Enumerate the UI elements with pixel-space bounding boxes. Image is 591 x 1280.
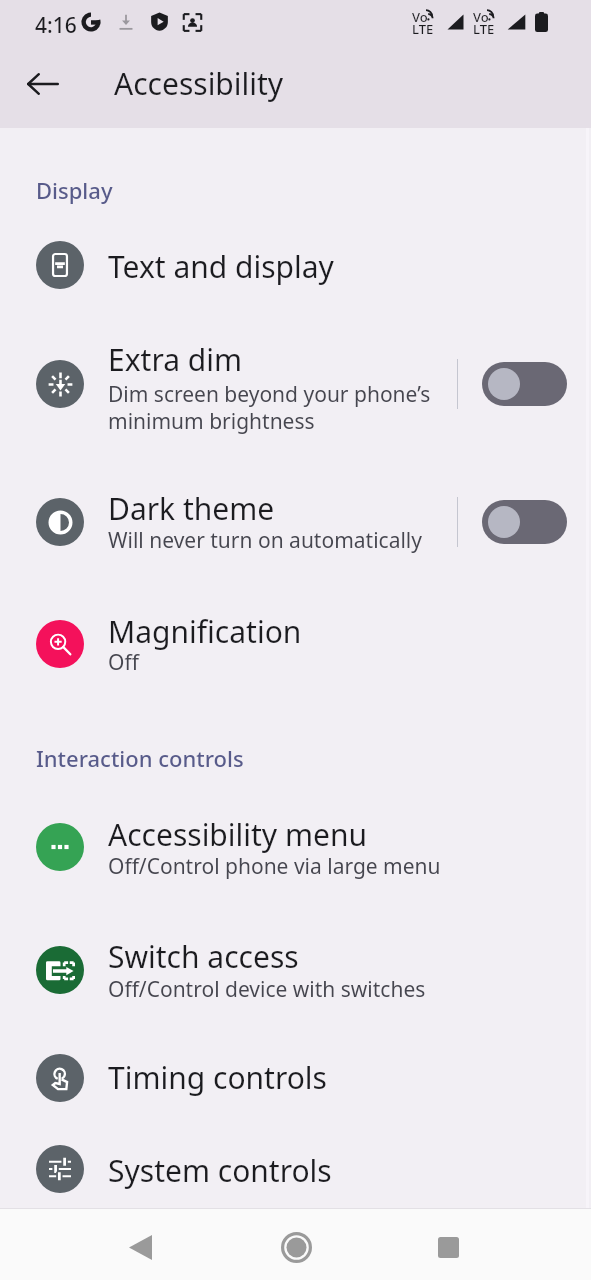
staticText: Text and display [108,246,334,287]
staticText: Vo [412,8,428,26]
staticText: Off [108,648,139,677]
staticText: Off/Control device with switches [108,975,426,1004]
button[interactable] [0,1133,591,1205]
button[interactable] [0,811,591,883]
staticText: LTE [412,20,434,38]
staticText: Interaction controls [36,743,244,773]
button[interactable] [0,348,591,420]
staticText: System controls [108,1150,332,1191]
staticText: Accessibility [114,63,284,104]
staticText: Vo [473,8,489,26]
button[interactable]: Home [264,1215,328,1279]
button[interactable] [0,229,591,301]
button[interactable] [0,608,591,680]
staticText: Timing controls [108,1057,327,1098]
staticText: Dim screen beyond your phone’s minimum b… [108,380,431,435]
button[interactable]: Toggle Dark theme [482,500,567,544]
button[interactable] [0,934,591,1006]
button[interactable]: Back [108,1215,172,1279]
button[interactable]: Recents [416,1215,480,1279]
staticText: Magnification [108,611,302,652]
staticText: Accessibility menu [108,814,368,855]
staticText: Display [36,175,113,205]
staticText: Switch access [108,936,299,977]
button[interactable]: Toggle Extra dim [482,362,567,406]
staticText: Extra dim [108,339,243,380]
button[interactable]: Back [19,60,67,108]
staticText: LTE [473,20,495,38]
staticText: Will never turn on automatically [108,526,422,555]
staticText: 4:16 [35,11,77,40]
staticText: Dark theme [108,488,275,529]
button[interactable] [0,486,591,558]
staticText: Off/Control phone via large menu [108,852,441,881]
button[interactable] [0,1042,591,1114]
